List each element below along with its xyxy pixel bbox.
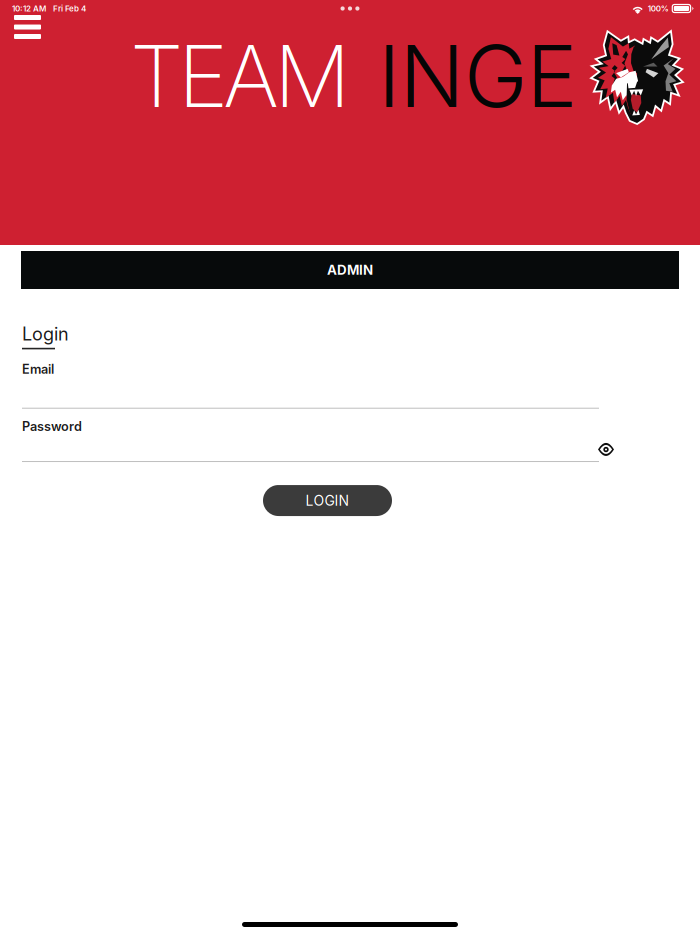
staticText: 10:12 AM	[12, 4, 46, 13]
staticText: Fri Feb 4	[53, 4, 86, 13]
staticText: TEAM	[130, 24, 351, 128]
staticText: LOGIN	[305, 492, 349, 509]
button[interactable]: Show password	[594, 440, 618, 459]
button[interactable]: LOGIN	[263, 485, 392, 516]
staticText: Password	[22, 419, 82, 434]
staticText: Login	[22, 323, 69, 345]
staticText: Email	[22, 361, 54, 377]
button[interactable]: Menu	[8, 9, 47, 45]
staticText: ADMIN	[327, 262, 373, 278]
staticText: INGE	[378, 24, 577, 128]
staticText: 100%	[648, 4, 669, 13]
